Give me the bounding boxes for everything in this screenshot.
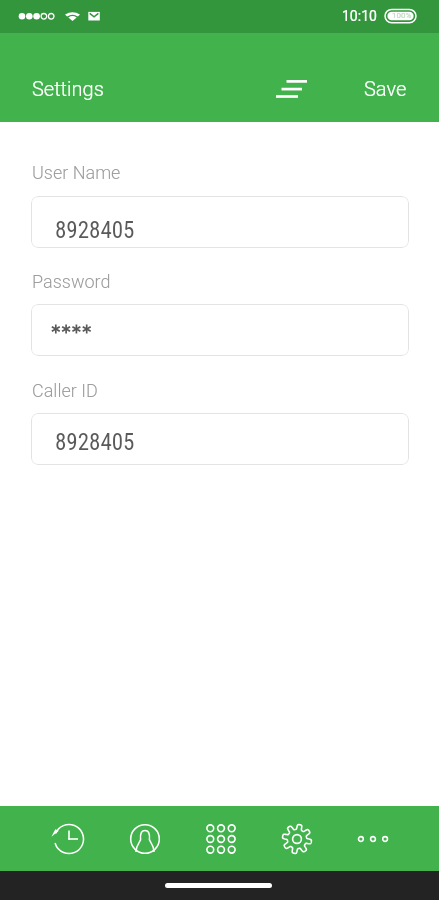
button[interactable] [31, 304, 409, 356]
button[interactable]: Contacts [107, 806, 183, 871]
button[interactable]: 8928405 [31, 196, 409, 248]
button[interactable]: Settings [259, 806, 335, 871]
staticText: Save [364, 77, 407, 100]
button[interactable]: Dialpad [183, 806, 259, 871]
staticText: Password [32, 271, 111, 292]
button[interactable]: More [335, 806, 411, 871]
button[interactable]: Sort order [266, 66, 318, 112]
staticText: Caller ID [32, 380, 98, 401]
button[interactable]: Save [350, 66, 424, 110]
button[interactable]: 8928405 [31, 413, 409, 465]
staticText: 100% [392, 11, 412, 20]
staticText: Settings [32, 77, 104, 100]
staticText: 10:10 [342, 8, 377, 24]
staticText: User Name [32, 162, 121, 183]
staticText: 8928405 [55, 217, 135, 244]
staticText: 8928405 [55, 429, 135, 456]
button[interactable]: Call history [30, 806, 107, 871]
button[interactable]: Settings [16, 66, 120, 110]
